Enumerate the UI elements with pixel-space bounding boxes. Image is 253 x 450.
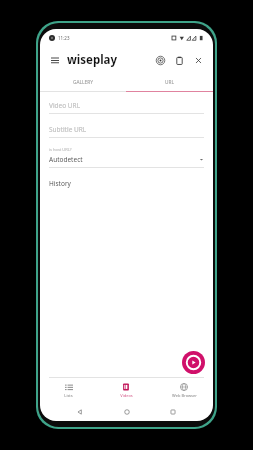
button[interactable]: Cast: [152, 52, 168, 68]
button[interactable]: Back: [73, 405, 87, 419]
staticText: GALLERY: [73, 79, 93, 86]
button[interactable]: GALLERY: [40, 73, 126, 91]
staticText: URL: [165, 79, 175, 86]
button[interactable]: Paste: [171, 52, 187, 68]
button[interactable]: Web Browser: [155, 378, 213, 403]
staticText: 11:23: [58, 35, 70, 41]
staticText: Web Browser: [172, 393, 197, 398]
button[interactable]: Play: [182, 351, 205, 374]
button[interactable]: Home: [120, 405, 134, 419]
staticText: Videos: [120, 393, 133, 398]
button[interactable]: Subtitle URL: [49, 125, 204, 138]
button[interactable]: URL: [126, 73, 213, 91]
staticText: Autodetect: [49, 155, 83, 164]
staticText: Lists: [64, 393, 73, 398]
button[interactable]: Close: [190, 52, 206, 68]
button[interactable]: Video URL: [49, 101, 204, 114]
button[interactable]: Autodetect: [49, 155, 204, 168]
staticText: is host URL?: [49, 147, 72, 152]
staticText: History: [49, 179, 71, 188]
staticText: wiseplay: [67, 52, 118, 68]
button[interactable]: Recents: [166, 405, 180, 419]
staticText: Video URL: [49, 101, 81, 110]
staticText: Subtitle URL: [49, 125, 87, 134]
button[interactable]: Menu: [47, 52, 62, 67]
button[interactable]: Videos: [97, 378, 155, 403]
button[interactable]: Lists: [40, 378, 97, 403]
